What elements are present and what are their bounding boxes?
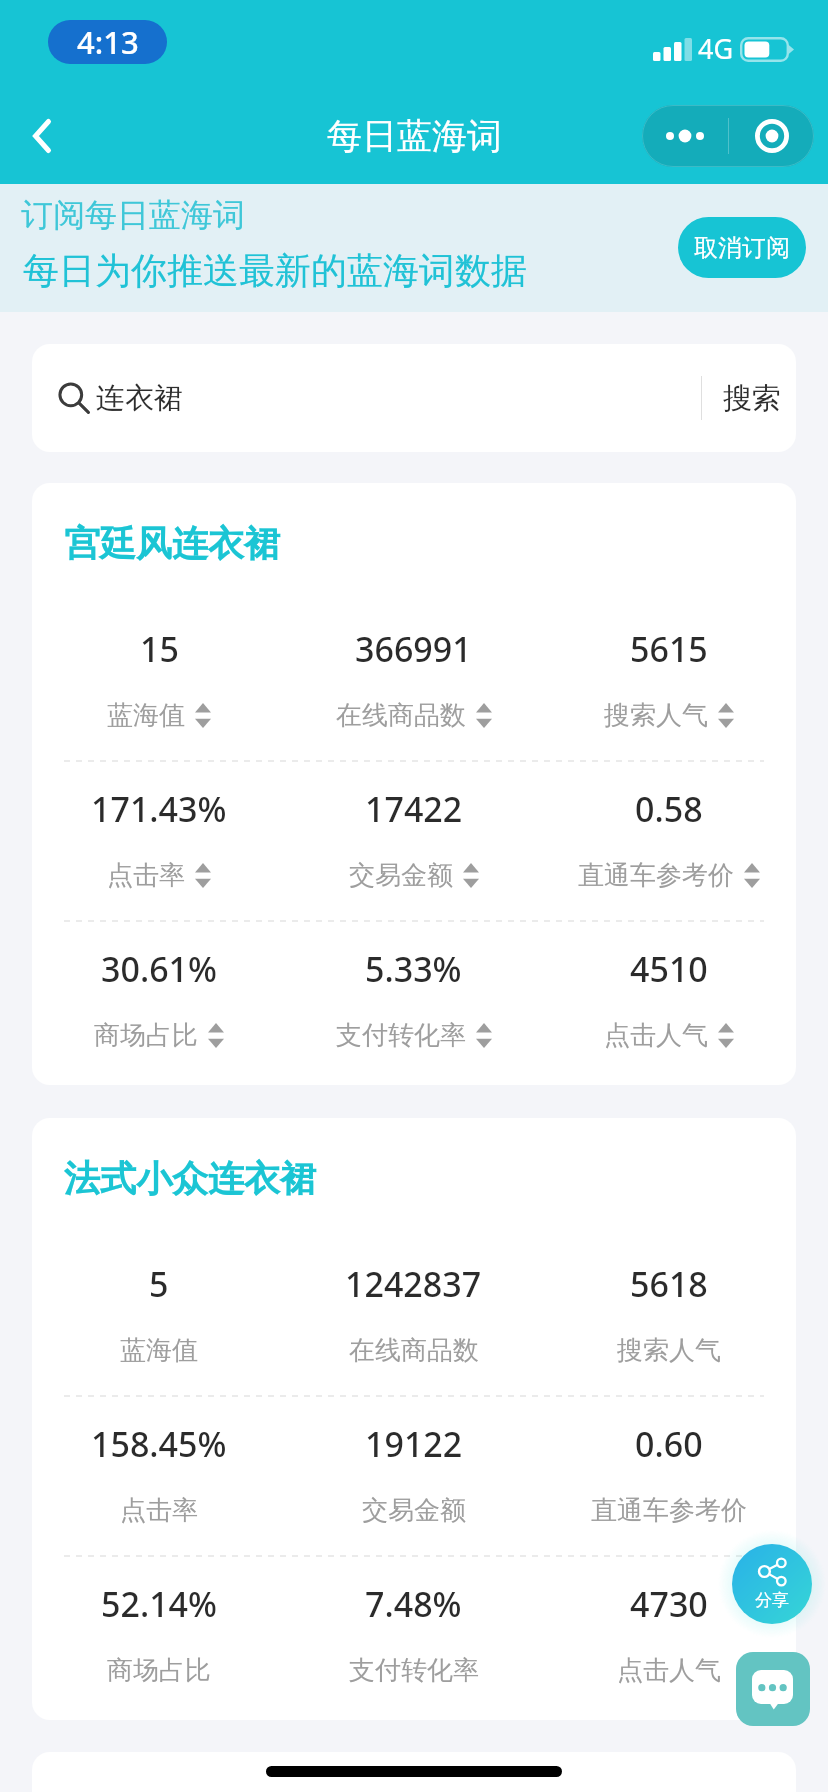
staticText: 分享 — [755, 1590, 789, 1611]
staticText: 15 — [140, 626, 179, 672]
staticText: 1242837 — [345, 1261, 482, 1307]
button[interactable]: 宫廷风连衣裙 — [32, 483, 796, 1085]
button[interactable]: 搜索 — [705, 344, 796, 452]
staticText: 30.61% — [101, 946, 218, 992]
staticText: 52.14% — [101, 1581, 218, 1627]
button[interactable]: 法式小众连衣裙 — [32, 1118, 796, 1720]
staticText: 每日为你推送最新的蓝海词数据 — [23, 248, 527, 293]
button[interactable]: 取消订阅 — [678, 217, 806, 278]
staticText: 5.33% — [365, 946, 462, 992]
staticText: 在线商品数 — [336, 699, 466, 732]
staticText: 商场占比 — [94, 1019, 198, 1052]
staticText: 7.48% — [365, 1581, 462, 1627]
staticText: 搜索人气 — [617, 1334, 721, 1367]
staticText: 交易金额 — [349, 859, 453, 892]
staticText: 点击率 — [120, 1494, 198, 1527]
staticText: 搜索 — [723, 380, 781, 417]
staticText: 蓝海值 — [107, 699, 185, 732]
staticText: 366991 — [355, 626, 472, 672]
staticText: 4730 — [630, 1581, 708, 1627]
staticText: 点击率 — [107, 859, 185, 892]
staticText: 支付转化率 — [349, 1654, 479, 1687]
staticText: 每日蓝海词 — [327, 114, 502, 158]
button[interactable]: Back — [11, 105, 73, 167]
staticText: 商场占比 — [107, 1654, 211, 1687]
button[interactable]: Customer service — [736, 1652, 810, 1726]
staticText: 连衣裙 — [96, 380, 183, 417]
staticText: 5 — [149, 1261, 169, 1307]
staticText: 宫廷风连衣裙 — [64, 521, 280, 566]
staticText: 158.45% — [91, 1421, 227, 1467]
staticText: 17422 — [365, 786, 463, 832]
staticText: 交易金额 — [362, 1494, 466, 1527]
staticText: 171.43% — [91, 786, 227, 832]
staticText: 点击人气 — [617, 1654, 721, 1687]
staticText: 订阅每日蓝海词 — [21, 195, 245, 235]
staticText: 直通车参考价 — [578, 859, 734, 892]
staticText: 5618 — [630, 1261, 708, 1307]
staticText: 4:13 — [77, 21, 139, 63]
staticText: 点击人气 — [604, 1019, 708, 1052]
staticText: 取消订阅 — [694, 233, 790, 263]
staticText: 在线商品数 — [349, 1334, 479, 1367]
staticText: 4510 — [630, 946, 708, 992]
button[interactable]: 分享 — [732, 1544, 812, 1624]
staticText: 5615 — [630, 626, 708, 672]
staticText: 法式小众连衣裙 — [64, 1156, 316, 1201]
button[interactable]: 连衣裙 — [32, 344, 796, 452]
staticText: 4G — [698, 30, 734, 67]
button[interactable]: More — [642, 105, 728, 167]
staticText: 19122 — [365, 1421, 463, 1467]
button[interactable]: Close — [729, 105, 814, 167]
staticText: 搜索人气 — [604, 699, 708, 732]
staticText: 0.58 — [635, 786, 703, 832]
staticText: 支付转化率 — [336, 1019, 466, 1052]
staticText: 0.60 — [635, 1421, 703, 1467]
staticText: 蓝海值 — [120, 1334, 198, 1367]
staticText: 直通车参考价 — [591, 1494, 747, 1527]
